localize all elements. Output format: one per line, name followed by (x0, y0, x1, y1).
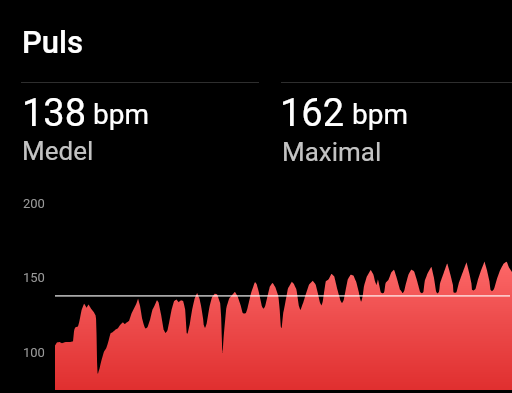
staticText: Medel (22, 136, 94, 166)
staticText: 150 (23, 270, 45, 285)
staticText: 138 (22, 91, 87, 136)
button[interactable]: Maximal 162 bpm (260, 76, 512, 164)
staticText: bpm (352, 98, 408, 131)
staticText: Puls (22, 24, 84, 60)
staticText: 162 (280, 91, 345, 136)
button[interactable]: Medel 138 bpm (0, 76, 260, 164)
staticText: 200 (23, 196, 45, 211)
staticText: 100 (23, 345, 45, 360)
staticText: Maximal (282, 137, 382, 167)
staticText: bpm (93, 98, 149, 131)
